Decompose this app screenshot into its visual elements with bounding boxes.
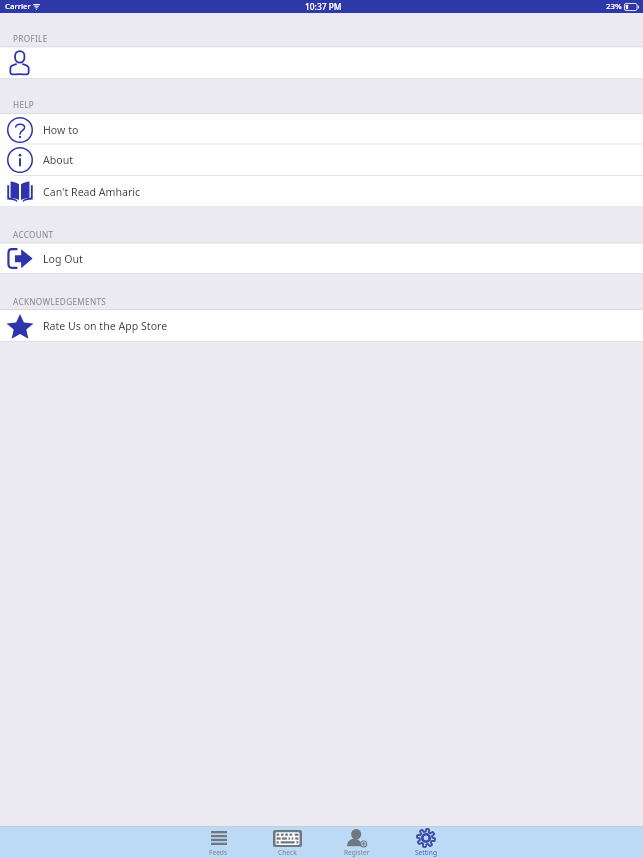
button[interactable]: Check xyxy=(253,827,322,858)
staticText: HELP xyxy=(13,99,35,110)
staticText: About xyxy=(43,153,74,167)
staticText: How to xyxy=(43,123,79,137)
staticText: Log Out xyxy=(43,252,83,266)
staticText: Setting xyxy=(415,848,437,857)
button[interactable]: Register xyxy=(322,827,391,858)
button[interactable]: Profile xyxy=(0,47,643,79)
button[interactable]: Log Out xyxy=(0,243,643,274)
staticText: Rate Us on the App Store xyxy=(43,319,168,333)
button[interactable]: Setting xyxy=(391,827,460,858)
staticText: Check xyxy=(278,848,297,857)
staticText: Can't Read Amharic xyxy=(43,185,141,199)
staticText: PROFILE xyxy=(13,33,48,44)
staticText: 23% xyxy=(606,1,622,12)
staticText: ACKNOWLEDGEMENTS xyxy=(13,296,107,307)
staticText: Feeds xyxy=(209,848,228,857)
staticText: Carrier xyxy=(5,1,31,12)
button[interactable]: Rate Us on the App Store xyxy=(0,310,643,342)
button[interactable]: Can't Read Amharic xyxy=(0,176,643,207)
staticText: Register xyxy=(344,848,370,857)
staticText: ACCOUNT xyxy=(13,229,54,240)
button[interactable]: About xyxy=(0,144,643,176)
button[interactable]: How to xyxy=(0,114,643,145)
button[interactable]: Feeds xyxy=(184,827,253,858)
staticText: 10:37 PM xyxy=(305,1,342,12)
